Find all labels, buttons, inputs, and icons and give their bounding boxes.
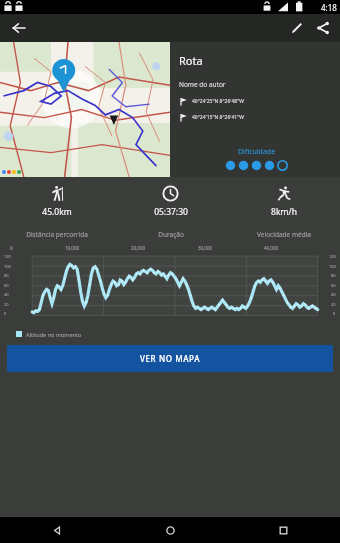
- staticText: 60: [331, 283, 336, 288]
- staticText: 40: [331, 292, 336, 297]
- staticText: 100: [329, 264, 336, 269]
- button[interactable]: Back: [6, 15, 32, 41]
- staticText: 120: [329, 254, 336, 259]
- staticText: 40: [4, 292, 9, 297]
- button[interactable]: Difficulty 4 of 5: [224, 160, 289, 171]
- staticText: 0: [333, 311, 336, 316]
- staticText: 0: [10, 245, 13, 251]
- staticText: 20: [331, 302, 336, 307]
- button[interactable]: 05:37:30: [114, 177, 227, 225]
- staticText: 40°24'15"N 8°26'41"W: [192, 114, 244, 121]
- staticText: 40°24'25"N 8°26'48"W: [192, 98, 244, 105]
- staticText: 120: [4, 254, 11, 259]
- button[interactable]: Home: [114, 517, 227, 543]
- button[interactable]: Back: [0, 517, 114, 543]
- button[interactable]: Recent apps: [227, 517, 340, 543]
- staticText: 4:18: [321, 2, 337, 13]
- staticText: 80: [331, 273, 336, 278]
- button[interactable]: Edit: [284, 15, 310, 41]
- staticText: 80: [4, 273, 9, 278]
- staticText: Rota: [179, 53, 203, 68]
- staticText: 10,000: [65, 245, 80, 251]
- button[interactable]: 8km/h: [227, 177, 340, 225]
- button[interactable]: VER NO MAPA: [7, 345, 333, 372]
- staticText: 05:37:30: [154, 206, 188, 218]
- staticText: 45.0km: [42, 206, 72, 218]
- staticText: 20: [4, 302, 9, 307]
- staticText: Altitude no momento: [26, 331, 82, 338]
- staticText: 60: [4, 283, 9, 288]
- staticText: Velocidade média: [257, 230, 311, 239]
- staticText: 8km/h: [271, 206, 297, 218]
- button[interactable]: Share: [310, 15, 336, 41]
- button[interactable]: Route map: [0, 42, 170, 177]
- staticText: Distância percorrida: [26, 230, 88, 239]
- staticText: Nome do autor: [179, 80, 226, 89]
- staticText: Dificuldade: [238, 147, 276, 157]
- staticText: 40,000: [264, 245, 279, 251]
- staticText: 20,000: [131, 245, 146, 251]
- staticText: 0: [4, 311, 7, 316]
- staticText: 100: [4, 264, 11, 269]
- staticText: VER NO MAPA: [140, 353, 200, 364]
- staticText: 30,000: [198, 245, 213, 251]
- staticText: Duração: [158, 230, 184, 239]
- button[interactable]: 45.0km: [0, 177, 114, 225]
